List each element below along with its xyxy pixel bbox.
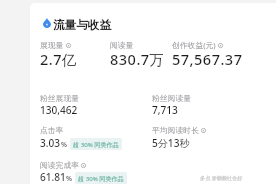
staticText: 展现量 [40,40,64,50]
staticText: 粉丝展现量 [40,93,79,103]
staticText: 创作收益(元) [172,40,216,51]
staticText: % [66,174,72,184]
staticText: 流量与收益 [53,18,111,33]
other: 说明 [218,43,223,48]
staticText: 超 30% 同类作品 [73,140,119,148]
staticText: % [61,140,67,150]
staticText: 5分13秒 [152,136,190,150]
other: 说明 [66,43,71,48]
staticText: 3.03 [40,136,61,150]
staticText: 粉丝阅读量 [152,93,191,103]
staticText: 2.7亿 [40,49,78,69]
staticText: 130,462 [40,103,78,117]
staticText: 多点 @懒懒社会好 [200,174,243,181]
staticText: 平均阅读时长 [152,125,199,135]
staticText: 阅读量 [110,40,134,50]
staticText: 830.7万 [110,49,165,69]
button[interactable]: 流量与收益 [30,3,276,184]
staticText: 7,713 [152,103,178,117]
staticText: 57,567.37 [172,49,243,69]
staticText: 61.81 [40,170,66,184]
staticText: 超 30% 同类作品 [78,174,124,182]
staticText: 点击率 [40,125,64,135]
other: 说明 [81,163,86,168]
staticText: 阅读完成率 [40,160,79,170]
other: 说明 [201,128,206,133]
